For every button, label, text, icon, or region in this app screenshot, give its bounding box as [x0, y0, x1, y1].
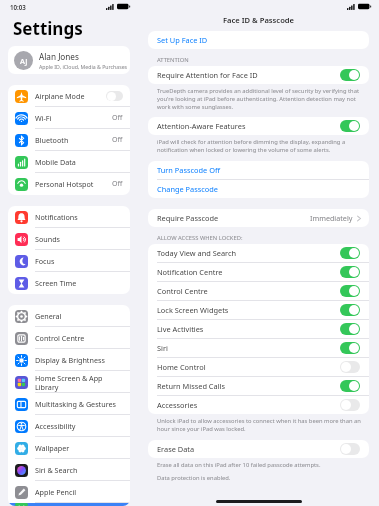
staticText: Notifications: [35, 212, 123, 222]
button[interactable]: Home Screen & App Library: [8, 371, 130, 393]
button[interactable]: Sounds: [8, 228, 130, 250]
staticText: Sounds: [35, 234, 123, 244]
button[interactable]: On: [340, 342, 360, 354]
staticText: ALLOW ACCESS WHEN LOCKED:: [157, 234, 243, 242]
staticText: 10:03: [10, 3, 26, 11]
staticText: Display & Brightness: [35, 355, 123, 365]
staticText: Return Missed Calls: [157, 381, 340, 391]
staticText: Require Passcode: [157, 213, 310, 223]
staticText: Immediately: [310, 213, 353, 223]
staticText: Personal Hotspot: [35, 179, 112, 189]
staticText: Siri & Search: [35, 465, 123, 475]
button[interactable]: Require Passcode: [148, 209, 369, 227]
button[interactable]: Set Up Face ID: [148, 31, 369, 49]
button[interactable]: Wallpaper: [8, 437, 130, 459]
staticText: Multitasking & Gestures: [35, 399, 123, 409]
button[interactable]: Home Control: [148, 358, 369, 376]
button[interactable]: General: [8, 305, 130, 327]
staticText: Erase Data: [157, 444, 340, 454]
staticText: Change Passcode: [157, 184, 219, 194]
staticText: Screen Time: [35, 278, 123, 288]
staticText: Siri: [157, 343, 340, 353]
staticText: Live Activities: [157, 324, 340, 334]
staticText: Attention-Aware Features: [157, 121, 340, 131]
staticText: Notification Centre: [157, 267, 340, 277]
staticText: iPad will check for attention before dim…: [157, 138, 363, 154]
button[interactable]: Lock Screen Widgets: [148, 301, 369, 319]
button[interactable]: Return Missed Calls: [148, 377, 369, 395]
staticText: Apple Pencil: [35, 487, 123, 497]
staticText: TrueDepth camera provides an additional …: [157, 87, 363, 111]
button[interactable]: Apple Pencil: [8, 481, 130, 503]
staticText: General: [35, 311, 123, 321]
button[interactable]: On: [340, 247, 360, 259]
button[interactable]: Bluetooth: [8, 129, 130, 151]
button[interactable]: Screen Time: [8, 272, 130, 294]
staticText: Off: [112, 113, 123, 123]
button[interactable]: Face ID & Passcode: [8, 503, 130, 506]
button[interactable]: Off: [106, 91, 123, 101]
staticText: Alan Jones: [39, 51, 79, 62]
button[interactable]: Require Attention for Face ID: [148, 66, 369, 84]
button[interactable]: Multitasking & Gestures: [8, 393, 130, 415]
button[interactable]: Notifications: [8, 206, 130, 228]
button[interactable]: Control Centre: [148, 282, 369, 300]
staticText: Lock Screen Widgets: [157, 305, 340, 315]
staticText: Wi-Fi: [35, 113, 112, 123]
staticText: Accessories: [157, 400, 340, 410]
staticText: Erase all data on this iPad after 10 fai…: [157, 461, 321, 469]
staticText: Off: [112, 179, 123, 189]
staticText: Settings: [13, 17, 83, 40]
staticText: Accessibility: [35, 421, 123, 431]
button[interactable]: Erase Data: [148, 440, 369, 458]
staticText: Apple ID, iCloud, Media & Purchases: [39, 63, 128, 70]
staticText: Home Screen & App Library: [35, 373, 123, 392]
button[interactable]: On: [340, 285, 360, 297]
button[interactable]: Siri & Search: [8, 459, 130, 481]
button[interactable]: Airplane Mode: [8, 85, 130, 107]
button[interactable]: AJ: [8, 46, 130, 74]
button[interactable]: On: [340, 120, 360, 132]
staticText: Control Centre: [157, 286, 340, 296]
button[interactable]: Display & Brightness: [8, 349, 130, 371]
staticText: Unlock iPad to allow accessories to conn…: [157, 417, 363, 433]
button[interactable]: Off: [340, 399, 360, 411]
staticText: Focus: [35, 256, 123, 266]
button[interactable]: Live Activities: [148, 320, 369, 338]
button[interactable]: Off: [340, 361, 360, 373]
button[interactable]: Control Centre: [8, 327, 130, 349]
button[interactable]: Change Passcode: [148, 180, 369, 198]
staticText: Mobile Data: [35, 157, 123, 167]
button[interactable]: Personal Hotspot: [8, 173, 130, 195]
staticText: AJ: [20, 56, 28, 66]
button[interactable]: Siri: [148, 339, 369, 357]
staticText: Today View and Search: [157, 248, 340, 258]
staticText: Off: [112, 135, 123, 145]
button[interactable]: Wi-Fi: [8, 107, 130, 129]
button[interactable]: Turn Passcode Off: [148, 161, 369, 179]
staticText: Bluetooth: [35, 135, 112, 145]
button[interactable]: Accessibility: [8, 415, 130, 437]
staticText: Set Up Face ID: [157, 35, 208, 45]
button[interactable]: On: [340, 380, 360, 392]
button[interactable]: Focus: [8, 250, 130, 272]
staticText: Wallpaper: [35, 443, 123, 453]
button[interactable]: Today View and Search: [148, 244, 369, 262]
button[interactable]: On: [340, 266, 360, 278]
button[interactable]: On: [340, 304, 360, 316]
button[interactable]: Attention-Aware Features: [148, 117, 369, 135]
staticText: Data protection is enabled.: [157, 474, 231, 482]
button[interactable]: On: [340, 69, 360, 81]
button[interactable]: Mobile Data: [8, 151, 130, 173]
staticText: Home Control: [157, 362, 340, 372]
button[interactable]: Notification Centre: [148, 263, 369, 281]
button[interactable]: On: [340, 323, 360, 335]
staticText: Require Attention for Face ID: [157, 70, 340, 80]
staticText: Control Centre: [35, 333, 123, 343]
button[interactable]: Off: [340, 443, 360, 455]
staticText: Face ID & Passcode: [223, 15, 295, 25]
button[interactable]: Accessories: [148, 396, 369, 414]
staticText: Airplane Mode: [35, 91, 106, 101]
staticText: Turn Passcode Off: [157, 165, 221, 175]
